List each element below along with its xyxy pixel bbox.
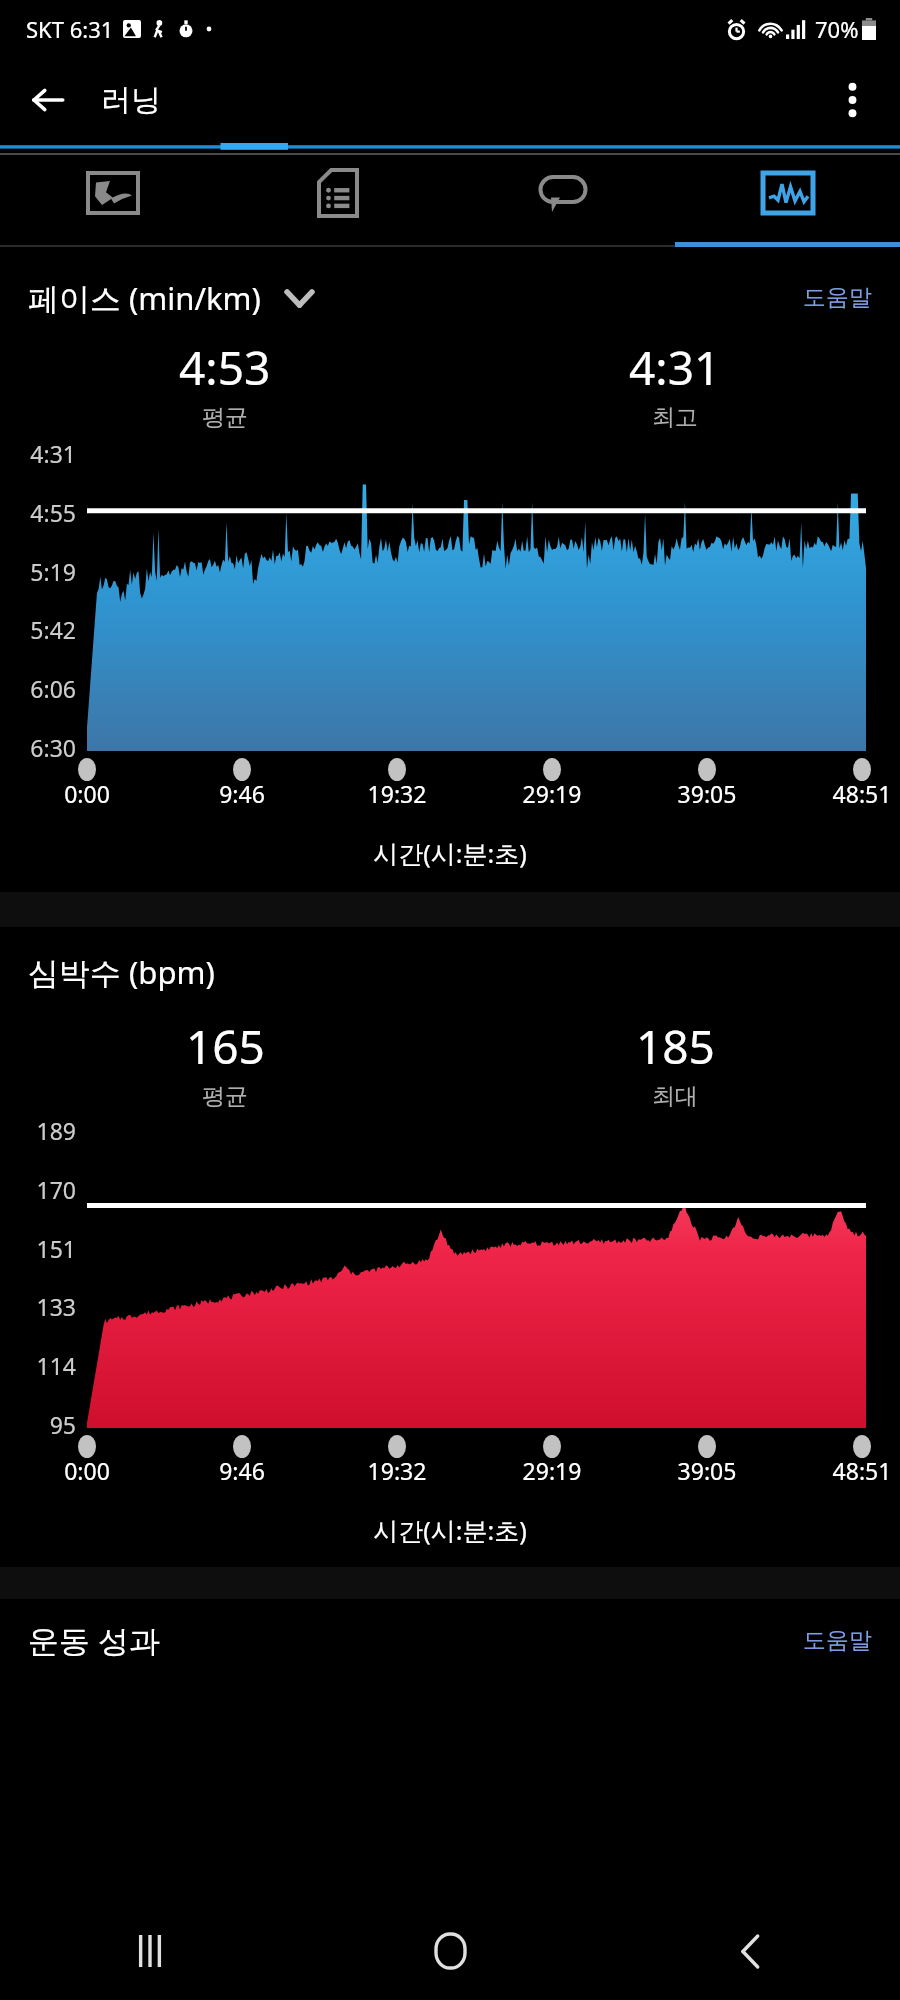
staticText: 19:32 bbox=[359, 1455, 435, 1486]
staticText: 러닝 bbox=[101, 81, 161, 119]
staticText: 189 bbox=[4, 1115, 76, 1146]
button[interactable]: Recent apps bbox=[0, 1902, 300, 2000]
staticText: 70% bbox=[815, 14, 859, 44]
staticText: 48:51 bbox=[824, 778, 900, 809]
staticText: 최대 bbox=[652, 1082, 698, 1111]
staticText: 4:31 bbox=[629, 336, 721, 399]
button[interactable]: Map tab bbox=[0, 155, 225, 247]
staticText: 최고 bbox=[652, 403, 698, 432]
staticText: 4:55 bbox=[4, 497, 76, 528]
staticText: 0:00 bbox=[49, 1455, 125, 1486]
staticText: 5:19 bbox=[4, 556, 76, 587]
button[interactable]: Home bbox=[300, 1902, 600, 2000]
staticText: 9:46 bbox=[204, 1455, 280, 1486]
button[interactable]: Details tab bbox=[225, 155, 450, 247]
button[interactable]: Laps tab bbox=[450, 155, 675, 247]
staticText: 5:42 bbox=[4, 614, 76, 645]
staticText: 39:05 bbox=[669, 778, 745, 809]
staticText: 19:32 bbox=[359, 778, 435, 809]
staticText: 39:05 bbox=[669, 1455, 745, 1486]
staticText: 165 bbox=[186, 1015, 265, 1078]
staticText: 평균 bbox=[202, 403, 248, 432]
button[interactable]: Charts tab bbox=[675, 155, 900, 247]
staticText: 4:53 bbox=[179, 336, 271, 399]
staticText: 151 bbox=[4, 1233, 76, 1264]
button[interactable]: Change metric bbox=[277, 276, 321, 320]
staticText: 6:06 bbox=[4, 673, 76, 704]
button[interactable]: More options bbox=[820, 68, 884, 132]
staticText: 29:19 bbox=[514, 1455, 590, 1486]
staticText: 114 bbox=[4, 1350, 76, 1381]
button[interactable]: 도움말 bbox=[797, 1618, 878, 1663]
staticText: 도움말 bbox=[803, 1626, 872, 1655]
staticText: 시간(시:분:초) bbox=[0, 1513, 900, 1547]
staticText: 29:19 bbox=[514, 778, 590, 809]
staticText: 운동 성과 bbox=[28, 1619, 161, 1661]
button[interactable]: Back bbox=[16, 68, 80, 132]
staticText: 95 bbox=[4, 1409, 76, 1440]
staticText: SKT 6:31 bbox=[26, 14, 114, 44]
staticText: 4:31 bbox=[4, 438, 76, 469]
staticText: 185 bbox=[636, 1015, 715, 1078]
staticText: 9:46 bbox=[204, 778, 280, 809]
staticText: 170 bbox=[4, 1174, 76, 1205]
staticText: 평균 bbox=[202, 1082, 248, 1111]
staticText: 0:00 bbox=[49, 778, 125, 809]
staticText: 페이스 (min/km) bbox=[28, 277, 261, 319]
button[interactable]: Back bbox=[600, 1902, 900, 2000]
staticText: 48:51 bbox=[824, 1455, 900, 1486]
staticText: 심박수 (bpm) bbox=[28, 951, 215, 993]
staticText: 133 bbox=[4, 1291, 76, 1322]
staticText: 6:30 bbox=[4, 732, 76, 763]
staticText: 시간(시:분:초) bbox=[0, 836, 900, 870]
button[interactable]: 도움말 bbox=[797, 275, 878, 320]
staticText: 도움말 bbox=[803, 283, 872, 312]
